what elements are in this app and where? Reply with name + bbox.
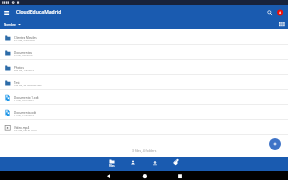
button[interactable]: Attach bbox=[166, 157, 186, 171]
staticText: Test bbox=[14, 81, 20, 85]
staticText: Photos bbox=[14, 66, 24, 70]
button[interactable]: Test bbox=[0, 75, 288, 90]
button[interactable]: Video.mp4 bbox=[0, 120, 288, 135]
staticText: Documento 1.odt bbox=[14, 96, 39, 100]
button[interactable]: Files bbox=[102, 157, 122, 171]
staticText: Documento.odt bbox=[14, 111, 37, 115]
staticText: 3.5 MB, Sat at 14:01 bbox=[14, 128, 38, 131]
button[interactable]: Photos bbox=[0, 60, 288, 75]
staticText: Clientes Moviles bbox=[14, 36, 37, 40]
button[interactable]: Add bbox=[269, 138, 281, 150]
button[interactable]: Share with people bbox=[123, 157, 143, 171]
button[interactable]: Grid view bbox=[276, 20, 287, 29]
staticText: 11 KB, 4/21/2021 bbox=[14, 98, 34, 101]
staticText: 5.7 MB, 4/30/2021 bbox=[14, 38, 36, 41]
button[interactable]: Clientes Moviles bbox=[0, 30, 288, 45]
button[interactable]: Menu bbox=[0, 7, 13, 18]
staticText: Nombre bbox=[4, 23, 16, 27]
staticText: Files bbox=[109, 164, 115, 168]
staticText: 100 KB, 20 minutes ago bbox=[14, 83, 42, 86]
button[interactable]: Recents bbox=[172, 171, 189, 180]
button[interactable]: Documento.odt bbox=[0, 105, 288, 120]
button[interactable]: Documento 1.odt bbox=[0, 90, 288, 105]
button[interactable]: Notifications bbox=[274, 7, 286, 19]
button[interactable]: Search bbox=[264, 7, 276, 19]
staticText: 11 KB, 1/10/2019 bbox=[14, 113, 34, 116]
staticText: Documentos bbox=[14, 51, 32, 55]
button[interactable]: Documentos bbox=[0, 45, 288, 60]
button[interactable]: Nombre bbox=[4, 20, 21, 29]
staticText: 3 files, 4 folders bbox=[132, 148, 157, 152]
button[interactable]: Back bbox=[100, 171, 117, 180]
button[interactable]: Download bbox=[145, 157, 165, 171]
staticText: Video.mp4 bbox=[14, 126, 30, 130]
button[interactable]: Home bbox=[136, 171, 153, 180]
staticText: 503 KB, 1/8/2019 bbox=[14, 68, 34, 71]
staticText: CloudEducaMadrid bbox=[16, 9, 62, 16]
staticText: 31 KB, 4/8/2019 bbox=[14, 53, 33, 56]
